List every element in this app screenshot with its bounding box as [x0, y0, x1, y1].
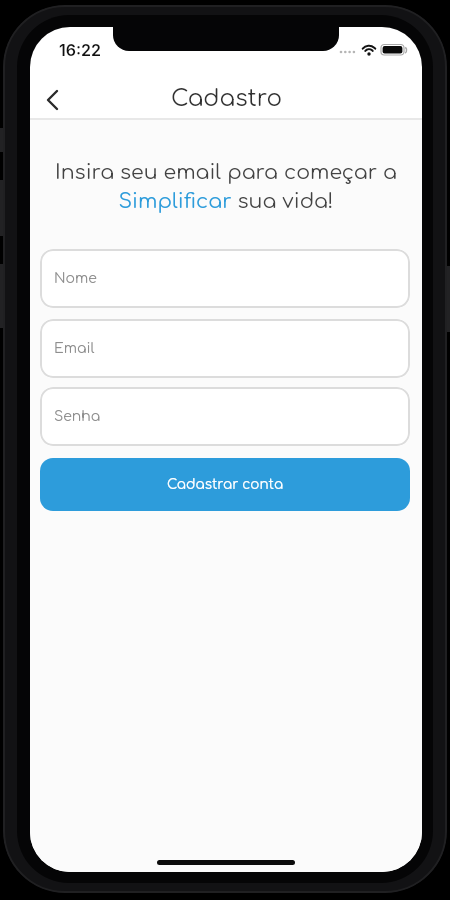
button[interactable]: Senha — [40, 387, 410, 446]
staticText: Cadastrar conta — [167, 477, 284, 492]
staticText: Cadastro — [171, 86, 282, 112]
button[interactable] — [38, 85, 68, 115]
staticText: Insira seu email para começar a Simplifi… — [55, 161, 397, 212]
staticText: 16:22 — [59, 40, 102, 59]
button[interactable]: Nome — [40, 249, 410, 308]
button[interactable]: Cadastrar conta — [40, 458, 410, 511]
staticText: Email — [54, 341, 95, 357]
button[interactable]: Email — [40, 319, 410, 378]
staticText: Nome — [54, 271, 97, 287]
staticText: Senha — [54, 409, 101, 425]
